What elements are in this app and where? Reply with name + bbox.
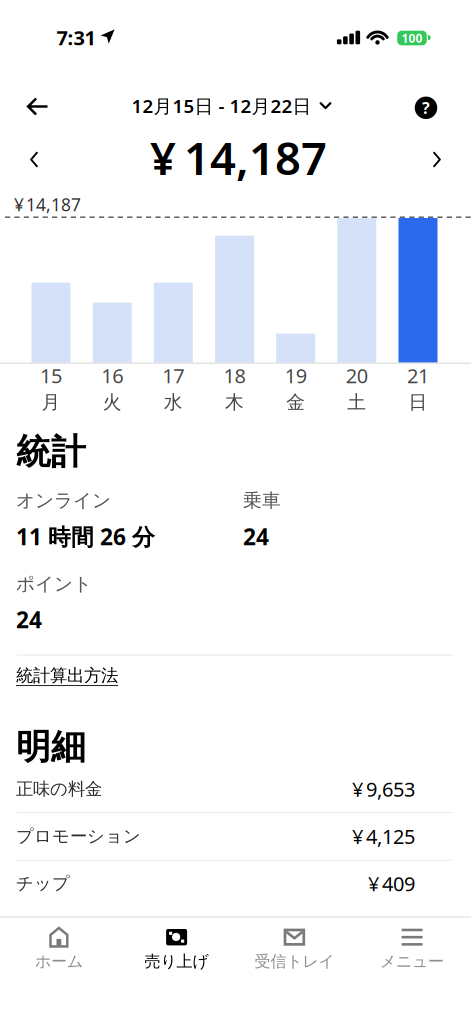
staticText: 火 [103, 391, 122, 414]
staticText: 21 [407, 362, 429, 389]
staticText: プロモーション [16, 826, 141, 847]
button[interactable]: ホーム [3, 918, 115, 980]
staticText: 17 [162, 362, 184, 389]
staticText: 100 [401, 30, 422, 46]
staticText: 水 [164, 391, 183, 414]
staticText: 月 [41, 391, 60, 414]
staticText: 16 [101, 362, 123, 389]
staticText: 木 [225, 391, 244, 414]
button[interactable]: ヘルプ [406, 88, 446, 128]
staticText: 11 時間 26 分 [16, 521, 155, 551]
staticText: 7:31 [56, 24, 95, 51]
button[interactable]: 統計算出方法 [16, 657, 118, 693]
staticText: 18 [223, 362, 245, 389]
staticText: 正味の料金 [16, 778, 102, 800]
staticText: 24 [16, 604, 42, 634]
button[interactable]: 次の週 [420, 139, 454, 179]
button[interactable]: 受信トレイ [238, 918, 350, 980]
staticText: 15 [40, 362, 62, 389]
staticText: メニュー [380, 952, 444, 971]
staticText: 乗車 [243, 489, 281, 512]
staticText: 24 [243, 521, 269, 551]
staticText: 12月15日 - 12月22日 [131, 93, 311, 118]
staticText: ? [422, 97, 430, 118]
button[interactable]: 12月15日 - 12月22日 [131, 86, 331, 126]
staticText: オンライン [16, 489, 111, 512]
staticText: ホーム [35, 952, 83, 971]
staticText: 統計算出方法 [16, 665, 118, 686]
staticText: 金 [286, 391, 305, 414]
staticText: 統計 [16, 431, 86, 473]
button[interactable]: メニュー [356, 918, 468, 980]
staticText: ポイント [16, 572, 92, 595]
button[interactable]: 戻る [15, 86, 59, 126]
staticText: 売り上げ [145, 952, 209, 971]
staticText: ¥ 9,653 [352, 776, 415, 802]
staticText: 受信トレイ [254, 952, 334, 971]
staticText: ¥ 14,187 [150, 127, 327, 188]
staticText: チップ [16, 873, 70, 894]
staticText: ¥ 409 [368, 870, 415, 897]
staticText: 19 [285, 362, 307, 389]
staticText: 土 [347, 391, 366, 414]
staticText: 20 [346, 362, 368, 389]
button[interactable]: 売り上げ [121, 918, 233, 980]
staticText: 日 [408, 391, 427, 414]
staticText: 明細 [16, 726, 86, 768]
staticText: ¥ 14,187 [14, 193, 81, 216]
button[interactable]: 前の週 [17, 139, 51, 179]
staticText: ¥ 4,125 [352, 823, 415, 850]
